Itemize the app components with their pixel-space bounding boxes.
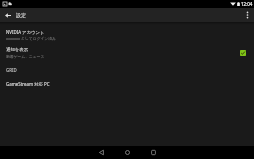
staticText: xxxxxxx としてログイン済み — [6, 36, 56, 41]
button[interactable]: GameStream 対応 PC — [0, 78, 254, 90]
button[interactable]: 通知を表示 — [0, 44, 254, 61]
staticText: 新着ゲーム、ニュース — [6, 54, 45, 59]
staticText: GameStream 対応 PC — [6, 81, 50, 87]
button[interactable]: Home — [125, 146, 130, 159]
staticText: 12:04 — [241, 1, 253, 7]
button[interactable]: Recents — [151, 146, 156, 159]
staticText: NVIDIA アカウント — [6, 29, 45, 35]
button[interactable]: Back — [99, 146, 104, 159]
staticText: GRID — [6, 67, 17, 73]
button[interactable]: More options — [241, 8, 254, 22]
button[interactable]: Back — [0, 8, 15, 22]
button[interactable]: NVIDIA アカウント — [0, 26, 254, 43]
staticText: 通知を表示 — [6, 47, 29, 53]
staticText: 設定 — [16, 12, 26, 18]
